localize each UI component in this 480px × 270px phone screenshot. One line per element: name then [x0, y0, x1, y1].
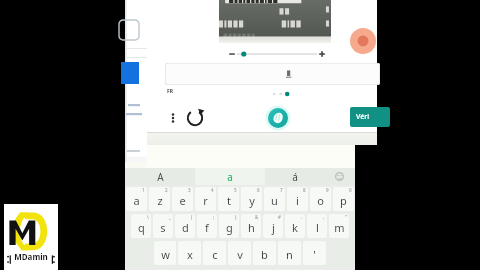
staticText: \ [147, 214, 149, 220]
button[interactable]: y [241, 187, 262, 211]
staticText: k [292, 220, 298, 235]
staticText: 9 [326, 187, 329, 193]
staticText: 8 [303, 187, 306, 193]
staticText: á [292, 170, 298, 184]
button[interactable]: t [218, 187, 239, 211]
staticText: o [317, 193, 324, 208]
button[interactable]: FR [166, 88, 175, 95]
button[interactable]: m [329, 214, 349, 238]
button[interactable]: g [219, 214, 239, 238]
staticText: 0 [349, 187, 352, 193]
staticText: # [278, 214, 281, 220]
staticText: h [248, 220, 255, 235]
button[interactable]: More options [163, 108, 183, 128]
staticText: a [133, 193, 140, 208]
staticText: MDamin [14, 251, 48, 262]
staticText: 3 [188, 187, 191, 193]
staticText: 5 [234, 187, 237, 193]
staticText: y [249, 193, 255, 208]
button[interactable]: a [195, 168, 265, 185]
staticText: FR [167, 88, 174, 95]
button[interactable]: l [307, 214, 327, 238]
button[interactable]: a [126, 187, 147, 211]
button[interactable]: q [131, 214, 151, 238]
staticText: c [212, 247, 218, 262]
staticText: A [157, 170, 164, 184]
button[interactable]: e [172, 187, 193, 211]
staticText: r [203, 193, 208, 208]
button[interactable]: b [253, 241, 276, 265]
button[interactable]: Rotate [183, 106, 207, 130]
button[interactable]: p [333, 187, 354, 211]
staticText: u [271, 193, 278, 208]
staticText: l [316, 220, 319, 235]
button[interactable]: c [203, 241, 226, 265]
button[interactable]: d [175, 214, 195, 238]
staticText: e [179, 193, 186, 208]
staticText: ( [191, 214, 193, 220]
staticText: w [161, 247, 170, 262]
button[interactable]: u [264, 187, 285, 211]
button[interactable]: MDamin [4, 204, 58, 270]
button[interactable]: v [228, 241, 251, 265]
button[interactable]: A [125, 168, 195, 185]
button[interactable]: Zoom out [227, 49, 237, 59]
button[interactable]: Véri [350, 107, 390, 127]
staticText: ) [235, 214, 237, 220]
button[interactable]: Zoom in [317, 49, 327, 59]
button[interactable]: j [263, 214, 283, 238]
button[interactable]: o [310, 187, 331, 211]
staticText: q [138, 220, 145, 235]
staticText: ; [213, 214, 215, 220]
staticText: d [182, 220, 189, 235]
staticText: . [301, 214, 303, 220]
staticText: & [255, 214, 259, 220]
button[interactable]: s [153, 214, 173, 238]
button[interactable]: r [195, 187, 216, 211]
button[interactable]: á [265, 168, 324, 185]
staticText: a [227, 170, 233, 184]
staticText: j [272, 220, 275, 235]
staticText: g [226, 220, 233, 235]
staticText: m [334, 220, 345, 235]
staticText: ' [313, 247, 316, 262]
button[interactable]: x [178, 241, 201, 265]
staticText: 7 [280, 187, 283, 193]
button[interactable]: ' [303, 241, 326, 265]
button[interactable]: n [278, 241, 301, 265]
staticText: 1 [142, 187, 145, 193]
button[interactable]: Emoji [324, 168, 355, 185]
button[interactable]: z [149, 187, 170, 211]
staticText: b [261, 247, 268, 262]
staticText: t [227, 193, 231, 208]
button[interactable]: i [287, 187, 308, 211]
button[interactable] [165, 63, 380, 85]
staticText: f [205, 220, 209, 235]
button[interactable] [237, 48, 317, 60]
button[interactable]: Translate [265, 105, 291, 131]
staticText: s [160, 220, 166, 235]
staticText: Véri [356, 112, 370, 122]
staticText: , [323, 214, 325, 220]
button[interactable]: h [241, 214, 261, 238]
staticText: _ [169, 214, 171, 220]
staticText: 4 [211, 187, 214, 193]
staticText: z [157, 193, 163, 208]
staticText: 6 [257, 187, 260, 193]
staticText: 2 [165, 187, 168, 193]
button[interactable]: k [285, 214, 305, 238]
staticText: v [237, 247, 243, 262]
staticText: " [345, 214, 347, 220]
staticText: p [340, 193, 347, 208]
staticText: x [187, 247, 193, 262]
staticText: n [286, 247, 293, 262]
button[interactable]: f [197, 214, 217, 238]
staticText: i [296, 193, 299, 208]
button[interactable]: w [154, 241, 176, 265]
